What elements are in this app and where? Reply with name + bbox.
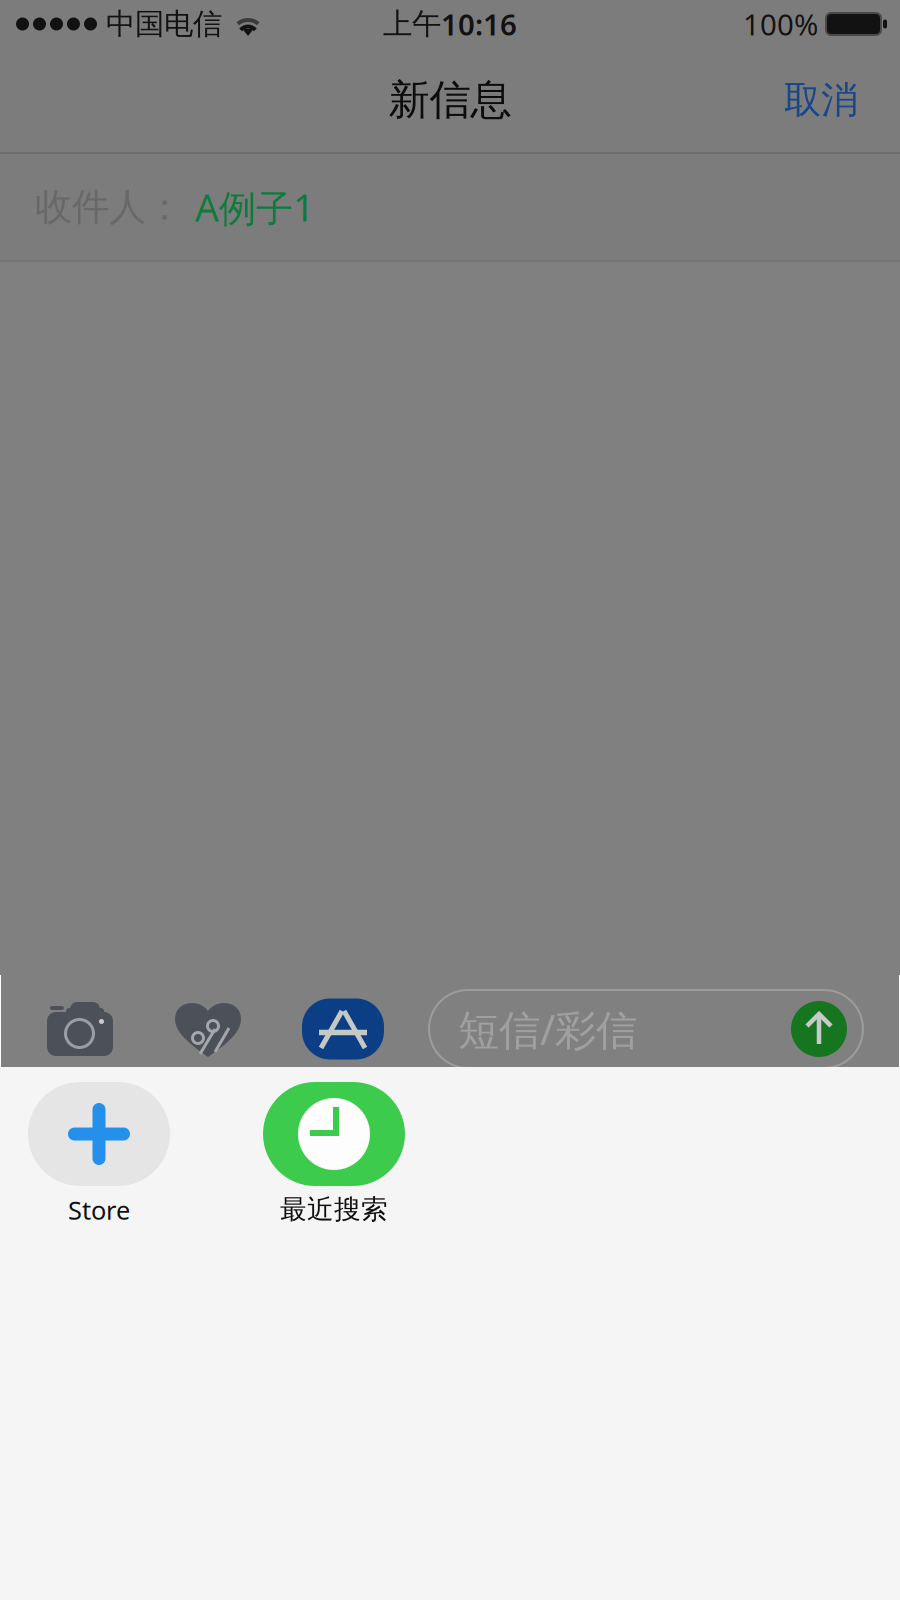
staticText: 10:16: [441, 4, 517, 43]
staticText: 新信息: [388, 75, 511, 125]
button[interactable]: Camera: [47, 1002, 113, 1056]
staticText: 最近搜索: [280, 1193, 388, 1226]
button[interactable]: Send: [791, 1001, 847, 1057]
staticText: 100%: [743, 4, 818, 43]
staticText: 收件人：: [35, 184, 183, 230]
staticText: Store: [68, 1193, 130, 1227]
staticText: 取消: [784, 77, 858, 123]
button[interactable]: Store: [28, 1082, 170, 1227]
staticText: 上午: [383, 6, 441, 42]
staticText: 中国电信: [106, 6, 222, 42]
button[interactable]: App Store: [302, 998, 384, 1059]
staticText: A例子1: [195, 182, 314, 232]
button[interactable]: Digital Touch: [174, 1000, 242, 1058]
staticText: 短信/彩信: [458, 1002, 637, 1056]
button[interactable]: 最近搜索: [263, 1082, 405, 1226]
button[interactable]: 取消: [764, 59, 878, 141]
